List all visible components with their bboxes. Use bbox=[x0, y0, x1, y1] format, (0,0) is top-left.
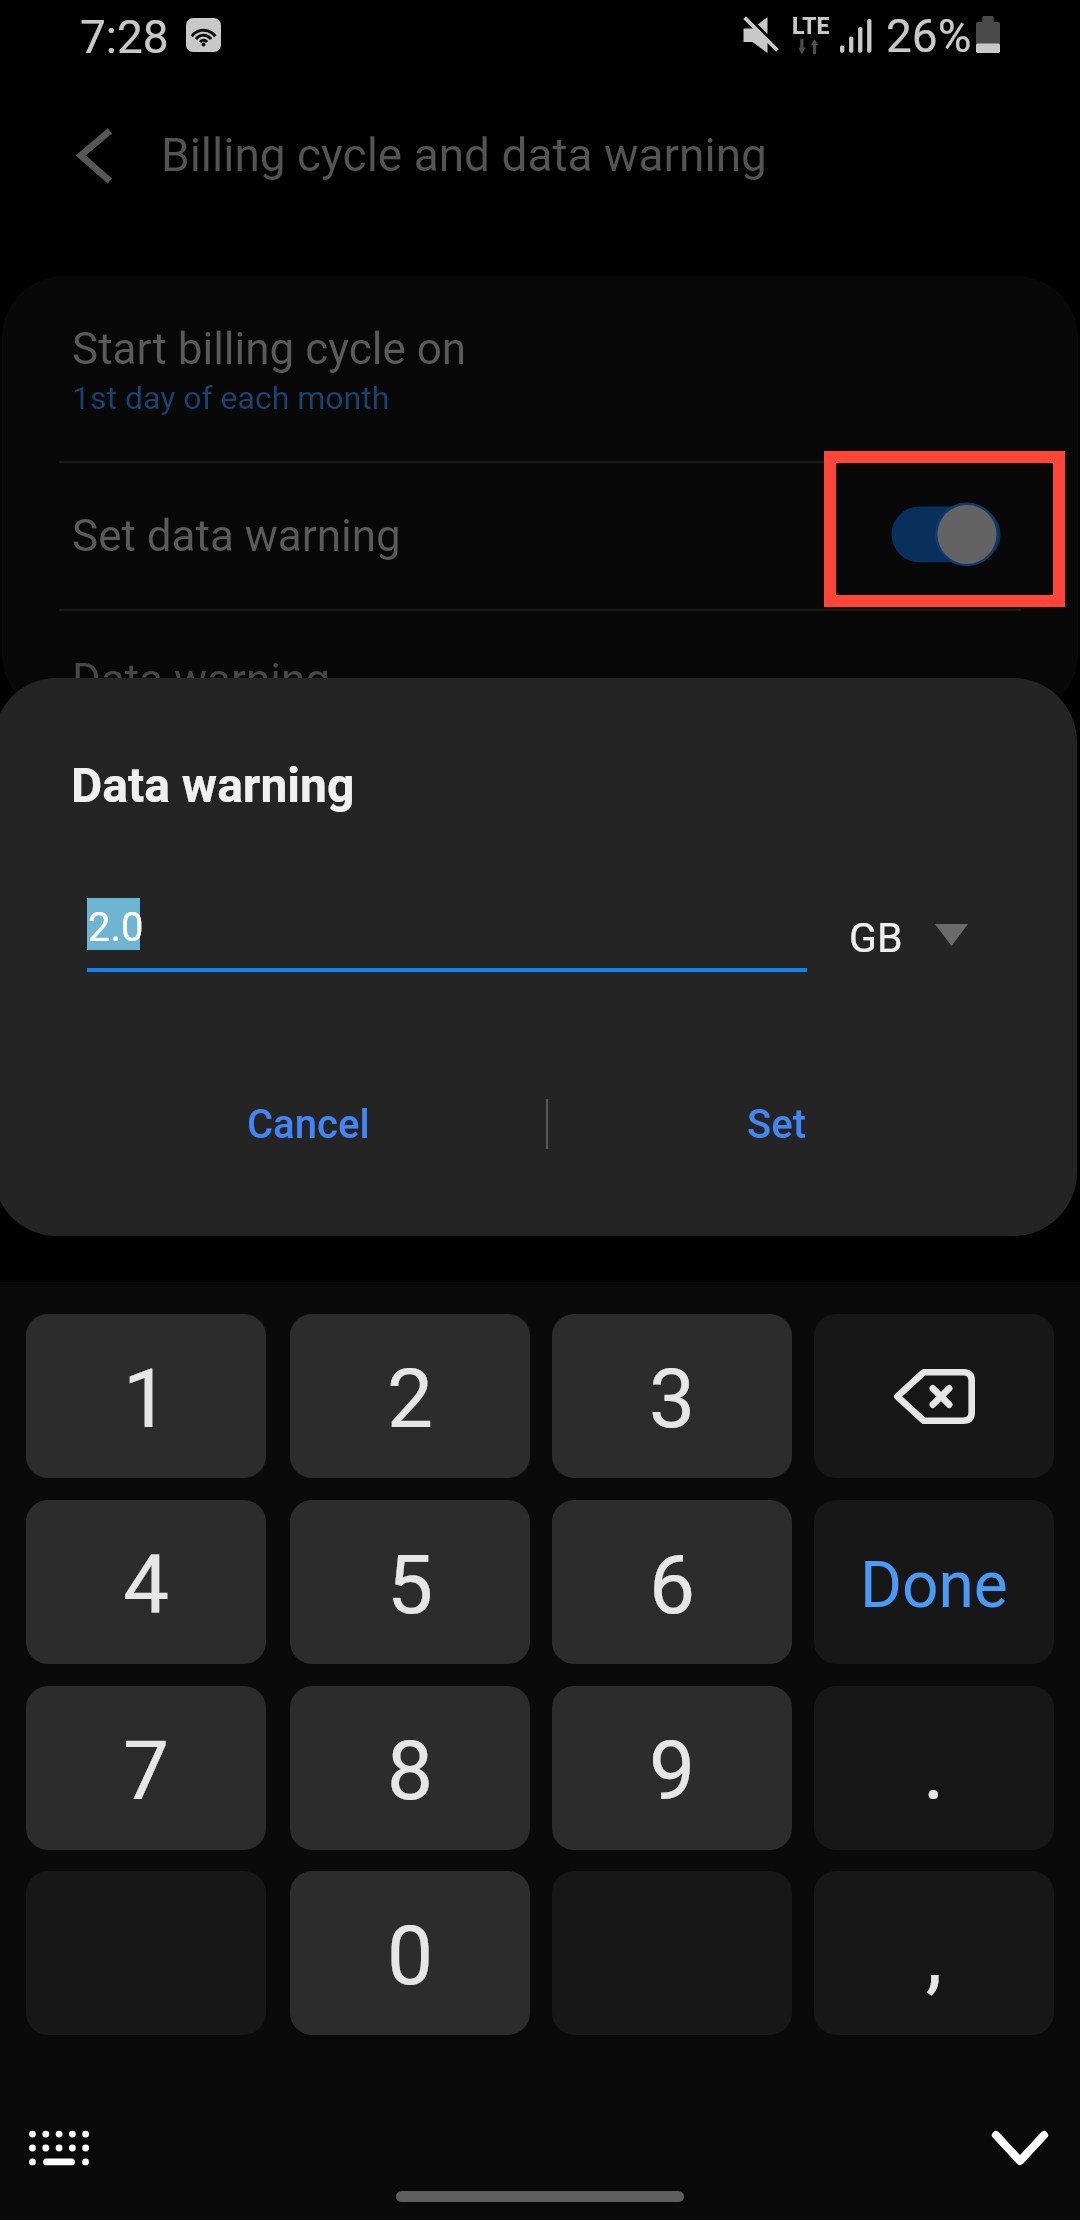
button[interactable] bbox=[2, 276, 1078, 462]
staticText: Data warning bbox=[71, 757, 355, 813]
staticText: Set bbox=[747, 1101, 806, 1148]
button[interactable]: Backspace bbox=[814, 1314, 1054, 1478]
button[interactable] bbox=[2, 463, 1078, 610]
button[interactable]: 0 bbox=[290, 1871, 530, 2035]
button[interactable]: 1 bbox=[26, 1314, 266, 1478]
staticText: 7 bbox=[123, 1723, 170, 1819]
staticText: Cancel bbox=[247, 1101, 370, 1148]
button[interactable]: Navigate up bbox=[70, 126, 122, 182]
button[interactable]: Hide keyboard bbox=[992, 2129, 1048, 2167]
button[interactable]: 2 bbox=[290, 1314, 530, 1478]
button[interactable]: Change keyboard bbox=[29, 2131, 89, 2165]
staticText: 1 bbox=[123, 1351, 170, 1447]
staticText: LTE bbox=[792, 13, 830, 40]
button[interactable]: Set bbox=[576, 1064, 976, 1184]
staticText: 6 bbox=[649, 1537, 696, 1633]
staticText: 8 bbox=[387, 1723, 434, 1819]
staticText: . bbox=[923, 1723, 945, 1819]
staticText: 26% bbox=[886, 9, 972, 63]
button[interactable]: 8 bbox=[290, 1686, 530, 1850]
button[interactable]: 7 bbox=[26, 1686, 266, 1850]
button[interactable]: 5 bbox=[290, 1500, 530, 1664]
staticText: 3 bbox=[649, 1351, 696, 1447]
button[interactable]: , bbox=[814, 1871, 1054, 2035]
button[interactable]: 4 bbox=[26, 1500, 266, 1664]
staticText: Done bbox=[860, 1548, 1008, 1623]
staticText: 2 bbox=[387, 1351, 434, 1447]
staticText: Data warning bbox=[72, 654, 330, 706]
button[interactable]: Done bbox=[814, 1500, 1054, 1664]
staticText: Set data warning bbox=[72, 510, 401, 562]
staticText: 2.0 bbox=[88, 904, 144, 951]
staticText: 5 bbox=[387, 1537, 434, 1633]
staticText: GB bbox=[849, 914, 903, 962]
staticText: , bbox=[926, 1908, 943, 2004]
button[interactable]: Select data unit bbox=[935, 924, 968, 946]
button[interactable]: . bbox=[814, 1686, 1054, 1850]
staticText: 1st day of each month bbox=[72, 379, 390, 417]
button[interactable]: 6 bbox=[552, 1500, 792, 1664]
button[interactable]: 3 bbox=[552, 1314, 792, 1478]
button[interactable]: 9 bbox=[552, 1686, 792, 1850]
button[interactable]: Cancel bbox=[108, 1064, 508, 1184]
button[interactable]: Set data warning toggle, on bbox=[875, 487, 1015, 581]
staticText: 7:28 bbox=[80, 10, 169, 64]
staticText: 9 bbox=[649, 1723, 696, 1819]
staticText: Start billing cycle on bbox=[72, 323, 467, 375]
staticText: 0 bbox=[387, 1908, 434, 2004]
staticText: 4 bbox=[123, 1537, 170, 1633]
staticText: Billing cycle and data warning bbox=[161, 128, 767, 182]
